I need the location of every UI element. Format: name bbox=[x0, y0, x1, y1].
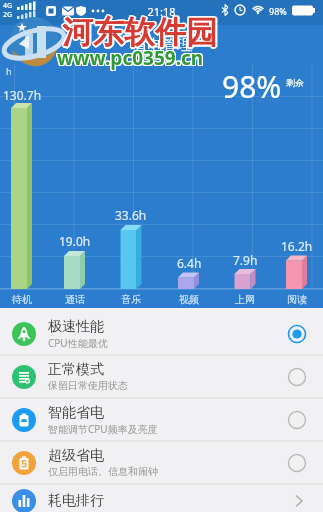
staticText: CPU性能最优 bbox=[48, 336, 108, 350]
staticText: h bbox=[6, 65, 12, 77]
button[interactable]: 耗电排行 bbox=[0, 479, 323, 512]
staticText: www.pc0359.cn bbox=[58, 45, 205, 71]
staticText: 19.0h bbox=[59, 233, 91, 249]
staticText: www.pc0359.cn bbox=[56, 46, 203, 72]
staticText: 河东软件园 bbox=[64, 13, 219, 52]
staticText: 4G bbox=[3, 1, 13, 11]
staticText: www.pc0359.cn bbox=[56, 44, 203, 70]
staticText: 130.7h bbox=[3, 87, 42, 103]
staticText: 河东软件园 bbox=[63, 12, 218, 51]
staticText: 河东软件园 bbox=[62, 15, 217, 54]
staticText: 正常模式 bbox=[48, 361, 104, 379]
staticText: 2G bbox=[3, 10, 13, 20]
staticText: 智能省电 bbox=[48, 404, 104, 422]
staticText: 通话 bbox=[65, 293, 85, 306]
staticText: 河东软件园 bbox=[61, 14, 216, 53]
staticText: 剩余 bbox=[286, 77, 304, 88]
staticText: 智能调节CPU频率及亮度 bbox=[48, 422, 158, 436]
staticText: 16.2h bbox=[281, 238, 313, 254]
button[interactable]: 极速性能 bbox=[0, 312, 323, 355]
staticText: 98% bbox=[222, 66, 282, 107]
staticText: 保留日常使用状态 bbox=[48, 379, 128, 392]
staticText: 河东软件园 bbox=[61, 12, 216, 51]
staticText: 仅启用电话、信息和闹钟 bbox=[48, 465, 158, 478]
staticText: 上网 bbox=[235, 293, 255, 306]
staticText: 视频 bbox=[179, 293, 199, 306]
staticText: 6.4h bbox=[177, 255, 202, 271]
staticText: 98% bbox=[269, 5, 287, 17]
staticText: www.pc0359.cn bbox=[57, 46, 204, 72]
staticText: 超级省电 bbox=[48, 447, 104, 465]
staticText: 河东软件园 bbox=[62, 12, 217, 51]
staticText: www.pc0359.cn bbox=[58, 44, 205, 70]
staticText: 耗电排行 bbox=[48, 492, 104, 510]
staticText: 河东软件园 bbox=[63, 14, 218, 53]
staticText: 7.9h bbox=[233, 252, 258, 268]
staticText: www.pc0359.cn bbox=[58, 46, 205, 72]
staticText: www.pc0359.cn bbox=[57, 44, 204, 70]
staticText: 21:18 bbox=[0, 4, 323, 19]
button[interactable]: 正常模式 bbox=[0, 355, 323, 398]
staticText: 33.6h bbox=[115, 207, 147, 223]
staticText: 音乐 bbox=[121, 293, 141, 306]
staticText: 河东软件园 bbox=[62, 13, 217, 52]
button[interactable]: 超级省电 bbox=[0, 441, 323, 484]
button[interactable]: 智能省电 bbox=[0, 398, 323, 441]
staticText: 阅读 bbox=[287, 293, 307, 306]
staticText: 河东软件园 bbox=[61, 13, 216, 52]
staticText: 省电管理 bbox=[132, 36, 192, 55]
staticText: www.pc0359.cn bbox=[57, 45, 204, 71]
staticText: 待机 bbox=[12, 293, 32, 306]
staticText: www.pc0359.cn bbox=[56, 45, 203, 71]
staticText: 极速性能 bbox=[48, 318, 104, 336]
